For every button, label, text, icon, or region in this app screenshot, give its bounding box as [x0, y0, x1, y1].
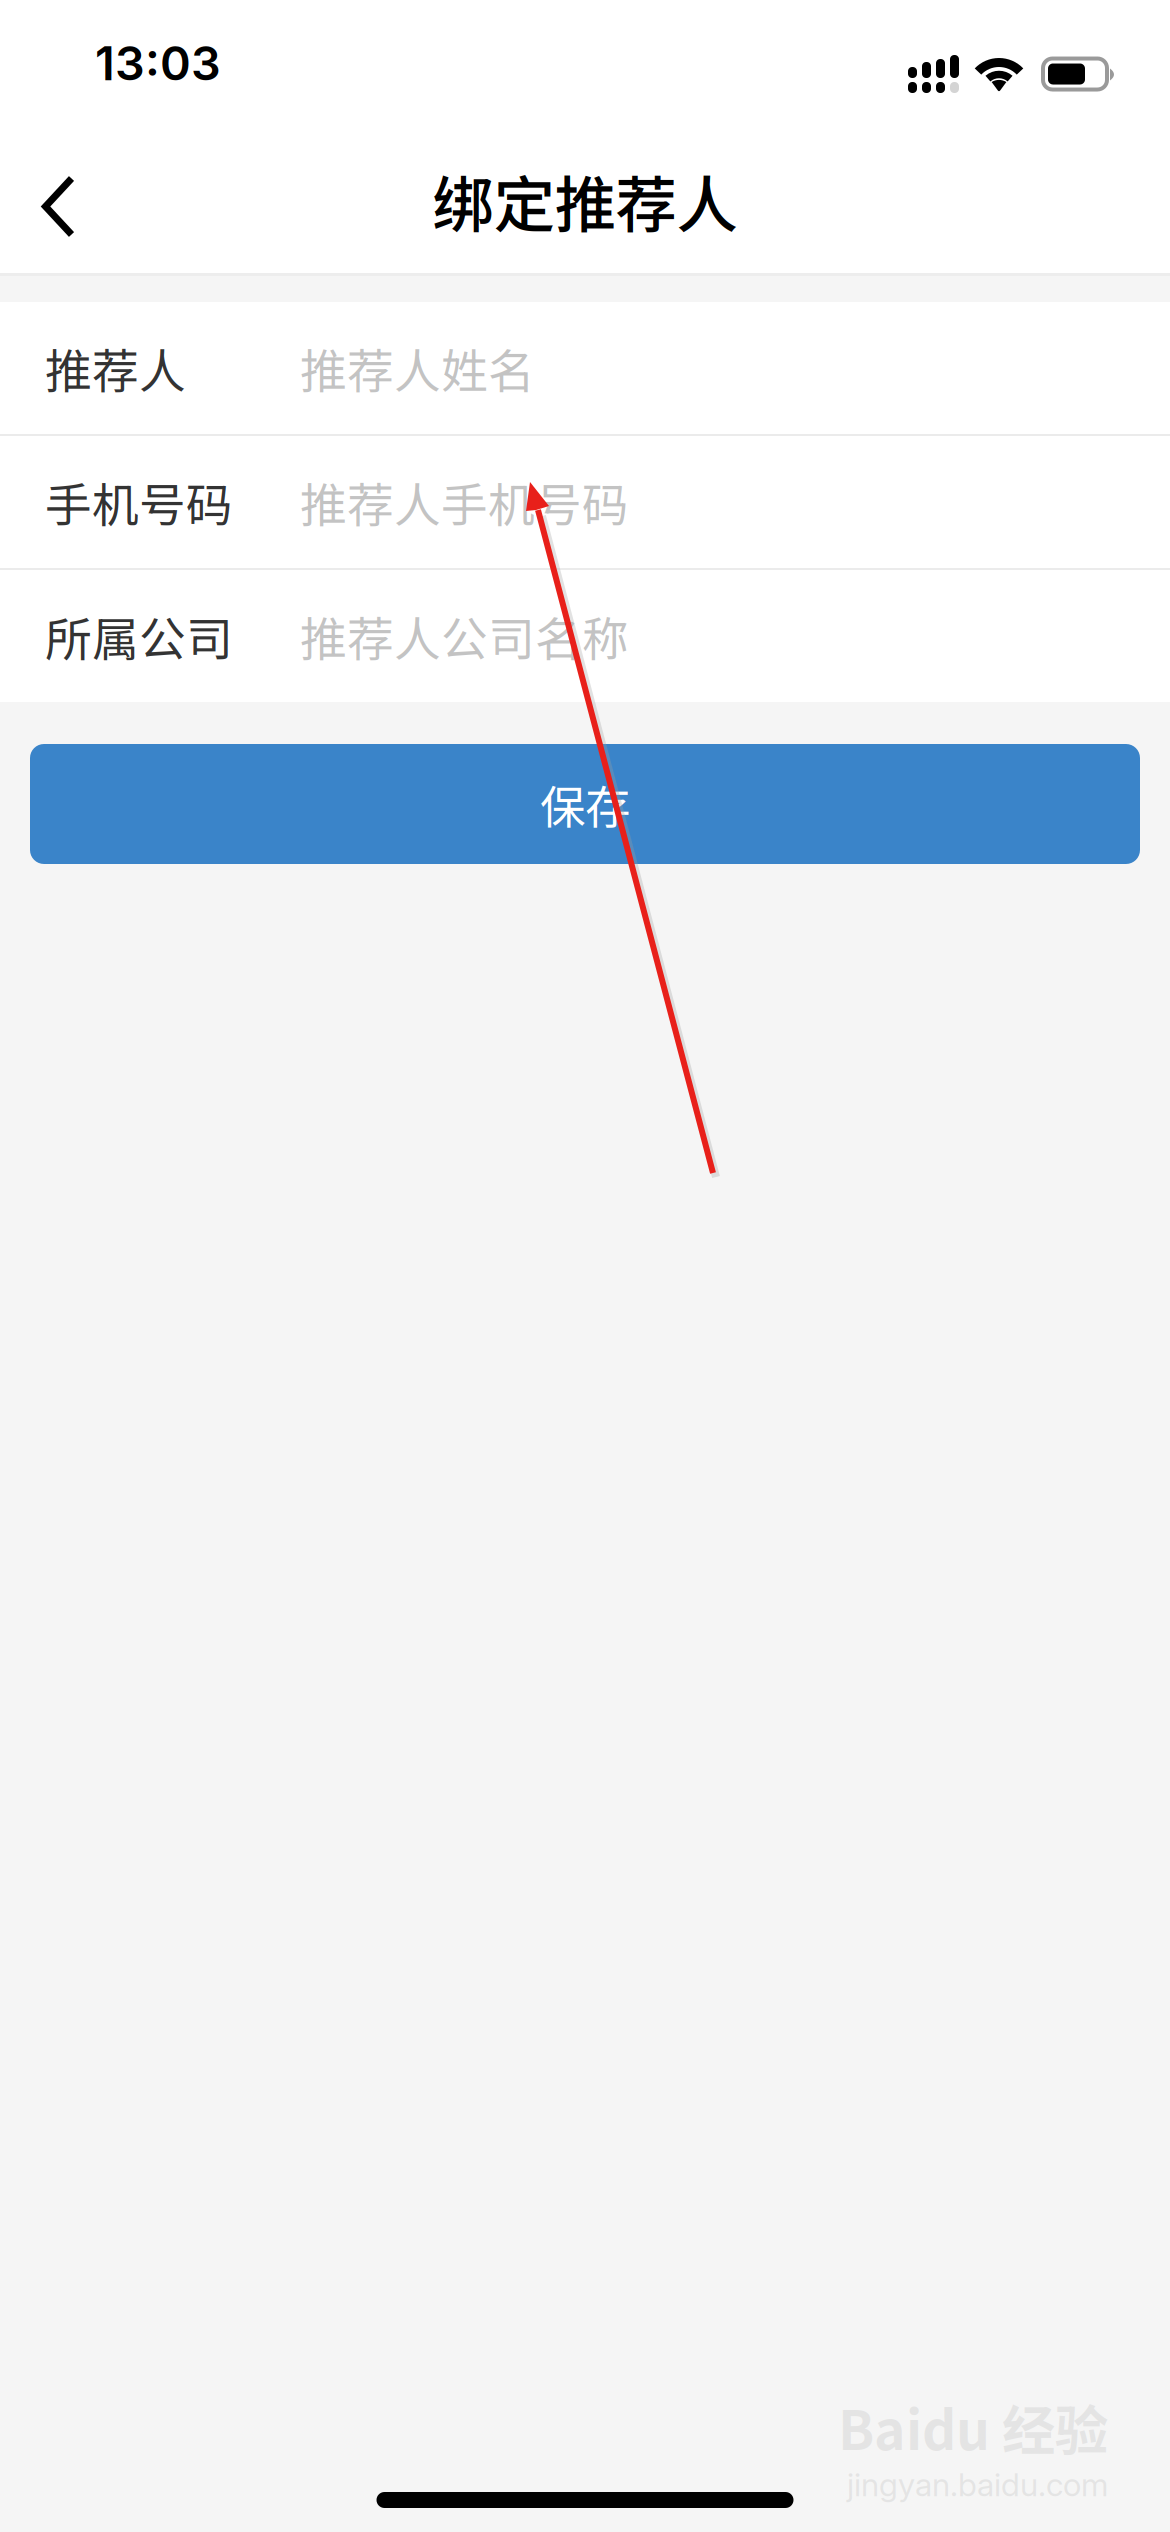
staticText: 手机号码: [45, 468, 233, 536]
staticText: 绑定推荐人: [432, 156, 737, 245]
staticText: 推荐人手机号码: [300, 468, 629, 536]
button[interactable]: Back: [0, 142, 117, 273]
staticText: 所属公司: [45, 602, 233, 670]
staticText: 推荐人公司名称: [300, 602, 629, 670]
staticText: Baidu 经验: [838, 2388, 1108, 2465]
button[interactable]: 保存: [30, 744, 1140, 864]
button[interactable]: 手机号码: [0, 436, 1170, 568]
staticText: 推荐人: [45, 334, 186, 402]
button[interactable]: 推荐人: [0, 302, 1170, 434]
button[interactable]: 所属公司: [0, 570, 1170, 702]
staticText: 推荐人姓名: [300, 334, 535, 402]
staticText: 保存: [540, 771, 630, 837]
staticText: 13:03: [95, 35, 221, 91]
staticText: jingyan.baidu.com: [847, 2465, 1108, 2504]
